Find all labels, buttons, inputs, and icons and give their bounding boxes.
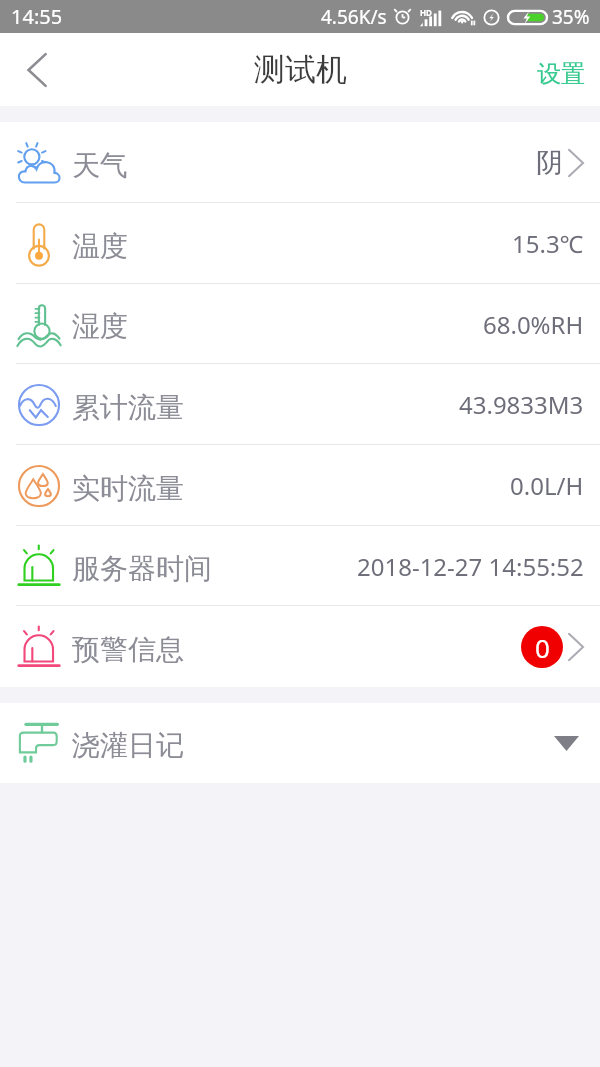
staticText: 阴 xyxy=(536,146,563,180)
staticText: 实时流量 xyxy=(72,471,184,506)
staticText: 43.9833M3 xyxy=(459,388,584,421)
button[interactable]: 浇灌日记 xyxy=(0,703,600,783)
staticText: 35% xyxy=(552,4,590,30)
staticText: 温度 xyxy=(72,229,128,264)
staticText: 测试机 xyxy=(254,50,347,89)
button[interactable]: 湿度 xyxy=(0,284,600,364)
staticText: 湿度 xyxy=(72,309,128,344)
staticText: 设置 xyxy=(537,59,585,89)
staticText: 15.3℃ xyxy=(512,227,584,260)
staticText: 0.0L/H xyxy=(510,469,584,502)
staticText: 天气 xyxy=(72,148,128,183)
staticText: HD xyxy=(420,7,432,18)
staticText: 14:55 xyxy=(11,3,63,30)
button[interactable]: 累计流量 xyxy=(0,364,600,445)
button[interactable]: 预警信息 xyxy=(0,606,600,687)
staticText: 预警信息 xyxy=(72,632,184,667)
staticText: 68.0%RH xyxy=(483,308,584,341)
staticText: 服务器时间 xyxy=(72,551,212,586)
staticText: 2018-12-27 14:55:52 xyxy=(357,550,584,583)
button[interactable]: 服务器时间 xyxy=(0,526,600,606)
staticText: 0 xyxy=(535,630,550,665)
button[interactable]: Back xyxy=(0,33,73,106)
button[interactable]: 天气 xyxy=(0,122,600,203)
button[interactable]: 设置 xyxy=(519,39,600,101)
staticText: 4.56K/s xyxy=(321,4,387,30)
staticText: 浇灌日记 xyxy=(72,728,184,763)
staticText: 累计流量 xyxy=(72,390,184,425)
button[interactable]: 温度 xyxy=(0,203,600,284)
button[interactable]: 实时流量 xyxy=(0,445,600,526)
